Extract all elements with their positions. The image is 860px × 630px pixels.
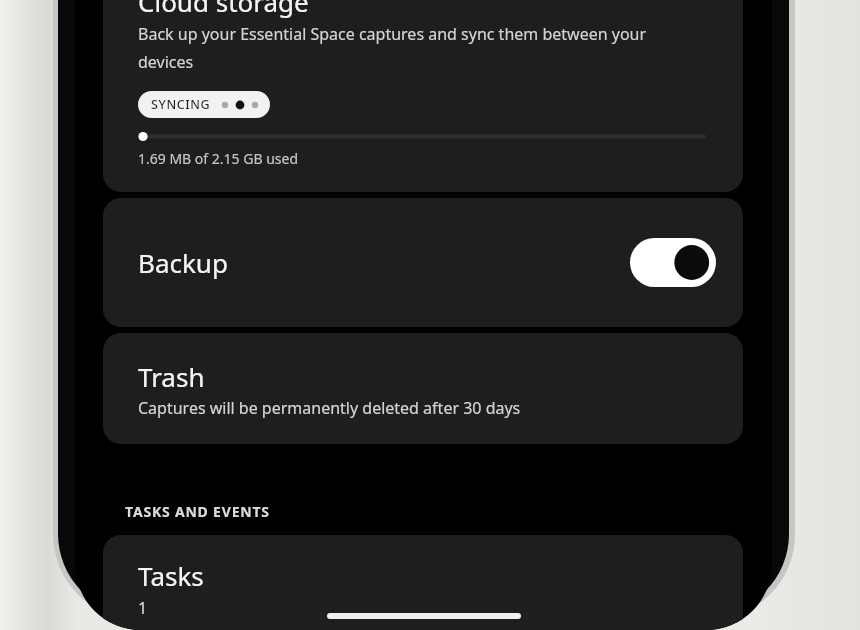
staticText: Cloud storage bbox=[138, 0, 309, 19]
staticText: Backup bbox=[138, 245, 228, 280]
button[interactable]: Backup, on bbox=[630, 238, 716, 287]
staticText: 1 bbox=[138, 597, 148, 619]
staticText: TASKS AND EVENTS bbox=[125, 502, 270, 521]
button[interactable]: Tasks bbox=[103, 535, 743, 630]
button[interactable]: Trash bbox=[103, 333, 743, 444]
staticText: Trash bbox=[138, 359, 205, 394]
button[interactable]: SYNCING bbox=[138, 91, 270, 118]
staticText: SYNCING bbox=[151, 96, 211, 113]
staticText: Captures will be permanently deleted aft… bbox=[138, 397, 521, 419]
button[interactable]: Cloud storage bbox=[103, 0, 743, 192]
staticText: 1.69 MB of 2.15 GB used bbox=[138, 149, 298, 168]
staticText: Tasks bbox=[138, 558, 204, 593]
button[interactable]: Backup bbox=[103, 198, 743, 327]
staticText: Back up your Essential Space captures an… bbox=[138, 23, 700, 73]
